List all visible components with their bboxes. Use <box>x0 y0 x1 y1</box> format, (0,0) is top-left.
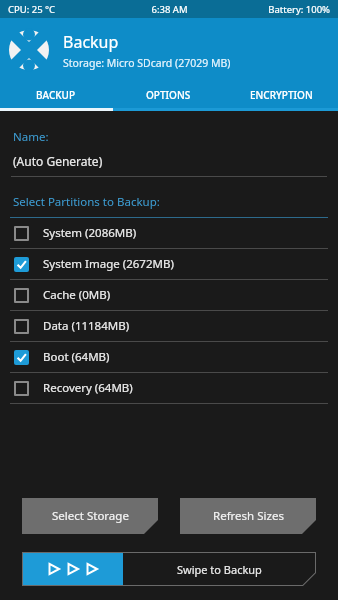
staticText: Name: <box>13 129 49 145</box>
button[interactable]: Cache (0MB) <box>0 280 338 310</box>
staticText: Recovery (64MB) <box>43 380 133 396</box>
button[interactable]: Select Storage <box>22 498 158 534</box>
staticText: CPU: 25 °C <box>8 3 116 16</box>
button[interactable]: Boot (64MB) <box>0 342 338 372</box>
staticText: Select Storage <box>52 508 129 524</box>
button[interactable]: (Auto Generate) <box>13 153 103 169</box>
button[interactable]: Swipe to Backup <box>22 552 316 586</box>
button[interactable]: Recovery (64MB) <box>0 373 338 403</box>
staticText: Select Partitions to Backup: <box>13 194 160 210</box>
button[interactable]: Refresh Sizes <box>180 498 316 534</box>
staticText: 6:38 AM <box>116 3 223 16</box>
button[interactable]: OPTIONS <box>112 82 225 108</box>
staticText: Backup <box>63 31 119 53</box>
staticText: Data (11184MB) <box>43 318 130 334</box>
staticText: System (2086MB) <box>43 225 137 241</box>
staticText: BACKUP <box>36 88 76 102</box>
staticText: Boot (64MB) <box>43 349 110 365</box>
staticText: Battery: 100% <box>223 3 330 16</box>
staticText: ENCRYPTION <box>250 88 313 102</box>
staticText: System Image (2672MB) <box>43 256 174 272</box>
button[interactable]: ENCRYPTION <box>225 82 338 108</box>
button[interactable]: Data (11184MB) <box>0 311 338 341</box>
staticText: Storage: Micro SDcard (27029 MB) <box>63 56 231 70</box>
button[interactable]: BACKUP <box>0 82 112 108</box>
staticText: OPTIONS <box>146 88 191 102</box>
button[interactable]: System (2086MB) <box>0 218 338 248</box>
staticText: Refresh Sizes <box>213 508 284 524</box>
staticText: Cache (0MB) <box>43 287 111 303</box>
staticText: Swipe to Backup <box>177 562 262 577</box>
button[interactable]: System Image (2672MB) <box>0 249 338 279</box>
